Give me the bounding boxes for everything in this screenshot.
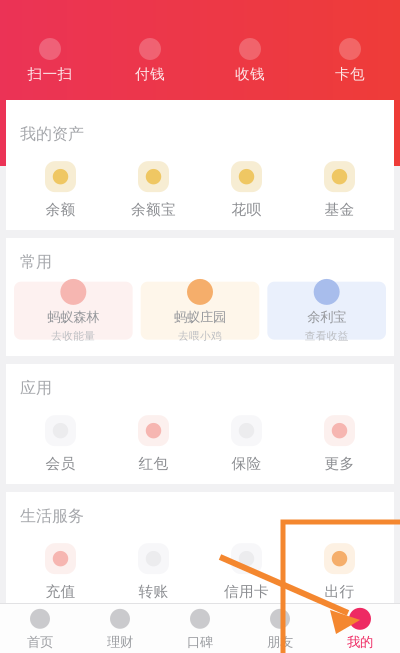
staticText: 更多 <box>324 455 354 473</box>
staticText: 应用 <box>20 378 52 398</box>
staticText: 会员 <box>45 455 75 473</box>
button[interactable]: 扫一扫 <box>0 38 100 83</box>
button[interactable]: 我的 <box>320 603 400 653</box>
button[interactable]: 信用卡 <box>200 542 293 601</box>
button[interactable]: 收钱 <box>200 38 300 83</box>
button[interactable]: 花呗 <box>200 160 293 219</box>
staticText: 朋友 <box>267 634 293 650</box>
staticText: 去喂小鸡 <box>178 329 222 342</box>
button[interactable]: 首页 <box>0 603 80 653</box>
staticText: 口碑 <box>187 634 213 650</box>
staticText: 首页 <box>27 634 53 650</box>
staticText: 基金 <box>324 201 354 219</box>
button[interactable]: 更多 <box>293 414 386 473</box>
staticText: 查看收益 <box>305 329 349 342</box>
staticText: 扫一扫 <box>27 65 72 83</box>
button[interactable]: 充值 <box>14 542 107 601</box>
button[interactable]: 会员 <box>14 414 107 473</box>
staticText: 卡包 <box>335 65 365 83</box>
button[interactable]: 朋友 <box>240 603 320 653</box>
staticText: 我的资产 <box>20 124 84 144</box>
button[interactable]: 付钱 <box>100 38 200 83</box>
staticText: 理财 <box>107 634 133 650</box>
staticText: 余利宝 <box>307 309 346 325</box>
staticText: 信用卡 <box>224 583 269 601</box>
staticText: 充值 <box>45 583 75 601</box>
staticText: 转账 <box>138 583 168 601</box>
button[interactable]: 转账 <box>107 542 200 601</box>
staticText: 蚂蚁森林 <box>47 309 99 325</box>
staticText: 去收能量 <box>51 329 95 342</box>
button[interactable]: 蚂蚁庄园 <box>141 282 259 340</box>
button[interactable]: 口碑 <box>160 603 240 653</box>
staticText: 花呗 <box>231 201 261 219</box>
staticText: 出行 <box>324 583 354 601</box>
staticText: 收钱 <box>235 65 265 83</box>
staticText: 余额宝 <box>131 201 176 219</box>
button[interactable]: 基金 <box>293 160 386 219</box>
button[interactable]: 红包 <box>107 414 200 473</box>
staticText: 我的 <box>347 634 373 650</box>
staticText: 蚂蚁庄园 <box>174 309 226 325</box>
staticText: 付钱 <box>135 65 165 83</box>
button[interactable]: 卡包 <box>300 38 400 83</box>
staticText: 余额 <box>45 201 75 219</box>
staticText: 红包 <box>138 455 168 473</box>
button[interactable]: 余利宝 <box>267 282 386 340</box>
button[interactable]: 保险 <box>200 414 293 473</box>
staticText: 保险 <box>231 455 261 473</box>
button[interactable]: 蚂蚁森林 <box>14 282 133 340</box>
staticText: 生活服务 <box>20 506 84 526</box>
button[interactable]: 余额宝 <box>107 160 200 219</box>
staticText: 常用 <box>20 252 52 272</box>
button[interactable]: 理财 <box>80 603 160 653</box>
button[interactable]: 出行 <box>293 542 386 601</box>
button[interactable]: 余额 <box>14 160 107 219</box>
